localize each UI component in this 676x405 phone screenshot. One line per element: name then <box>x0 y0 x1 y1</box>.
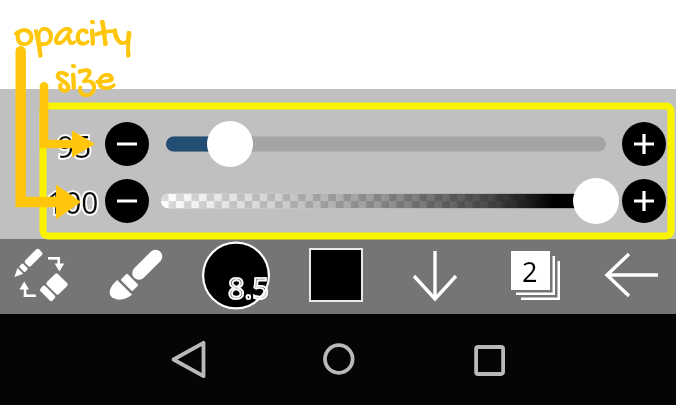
button[interactable]: Size slider <box>150 119 630 169</box>
staticText: 100 <box>47 182 99 223</box>
staticText: size <box>55 58 116 104</box>
staticText: opacity <box>14 14 132 60</box>
button[interactable]: Edit tools <box>8 244 76 308</box>
button[interactable]: Decrease size <box>105 122 149 166</box>
button[interactable]: Size value <box>207 121 253 167</box>
staticText: 100 <box>47 182 99 223</box>
staticText: 95 <box>57 126 92 167</box>
button[interactable]: Opacity value <box>573 178 619 224</box>
button[interactable]: Decrease opacity <box>105 179 149 223</box>
button[interactable]: Save <box>406 247 464 303</box>
staticText: 2 <box>522 253 538 290</box>
button[interactable]: Home <box>310 331 367 388</box>
button[interactable]: Layers <box>505 246 567 304</box>
button[interactable]: Recent apps <box>461 331 518 388</box>
staticText: 95 <box>57 126 92 167</box>
button[interactable]: Back <box>160 331 217 388</box>
button[interactable]: Opacity slider <box>150 176 630 226</box>
button[interactable]: Brush <box>104 242 170 308</box>
button[interactable]: Back <box>605 250 663 300</box>
staticText: 8.5 <box>228 268 269 307</box>
button[interactable]: Brush size 8.5 <box>202 241 270 309</box>
button[interactable]: Increase size <box>622 122 666 166</box>
button[interactable]: Increase opacity <box>622 179 666 223</box>
